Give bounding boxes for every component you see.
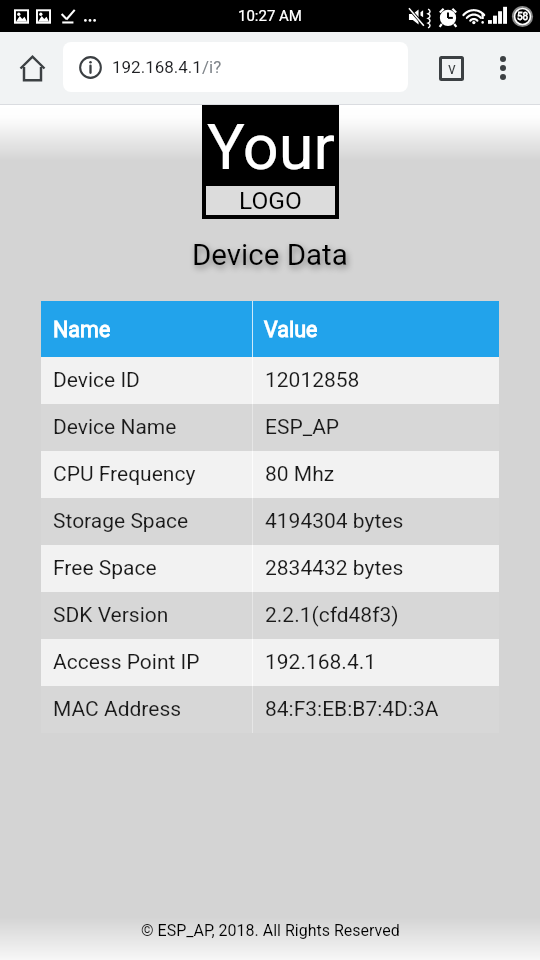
button[interactable]: More options [479, 32, 527, 104]
staticText: © ESP_AP, 2018. All Rights Reserved [141, 921, 400, 940]
staticText: 2.2.1(cfd48f3) [265, 603, 399, 628]
button[interactable]: Device ID [41, 357, 499, 404]
staticText: 84:F3:EB:B7:4D:3A [265, 697, 439, 722]
staticText: LOGO [239, 186, 302, 215]
staticText: 80 Mhz [265, 462, 335, 487]
button[interactable]: CPU Frequency [41, 451, 499, 498]
staticText: SDK Version [53, 603, 169, 628]
staticText: 192.168.4.1 [265, 650, 377, 675]
staticText: 4194304 bytes [265, 509, 404, 534]
staticText: MAC Address [53, 697, 182, 722]
staticText: Your [207, 111, 335, 185]
staticText: 2834432 bytes [265, 556, 404, 581]
button[interactable]: Home [8, 44, 56, 92]
staticText: Device Name [53, 415, 177, 440]
button[interactable]: SDK Version [41, 592, 499, 639]
staticText: v [448, 59, 456, 78]
staticText: 10:27 AM [238, 7, 302, 25]
button[interactable]: Tabs [427, 32, 475, 104]
staticText: 192.168.4.1 [112, 57, 202, 77]
button[interactable]: MAC Address [41, 686, 499, 733]
staticText: Device Data [192, 238, 348, 273]
staticText: Access Point IP [53, 650, 200, 675]
staticText: /i? [202, 57, 222, 77]
button[interactable]: Free Space [41, 545, 499, 592]
staticText: Value [264, 317, 318, 342]
button[interactable]: Storage Space [41, 498, 499, 545]
staticText: Name [53, 317, 111, 342]
staticText: CPU Frequency [53, 462, 196, 487]
staticText: ESP_AP [265, 415, 340, 440]
button[interactable]: 192.168.4.1 [63, 42, 408, 92]
button[interactable]: Device Name [41, 404, 499, 451]
staticText: Device ID [53, 368, 140, 393]
staticText: Storage Space [53, 509, 189, 534]
button[interactable]: Access Point IP [41, 639, 499, 686]
staticText: Free Space [53, 556, 157, 581]
staticText: 58 [517, 11, 529, 23]
staticText: 12012858 [265, 368, 360, 393]
